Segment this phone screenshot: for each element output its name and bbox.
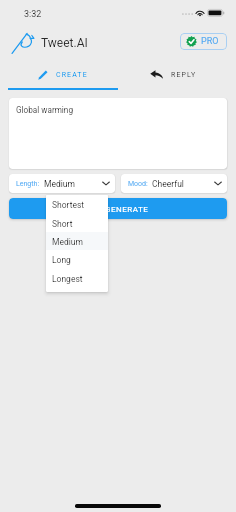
- staticText: Global warming: [16, 105, 73, 115]
- staticText: Cheerful: [152, 179, 184, 189]
- staticText: 3:32: [24, 9, 42, 20]
- staticText: Shortest: [52, 200, 85, 210]
- button[interactable]: Medium: [46, 232, 108, 252]
- button[interactable]: Global warming: [9, 98, 227, 169]
- staticText: Tweet.AI: [41, 36, 88, 50]
- staticText: Longest: [52, 274, 83, 284]
- staticText: Short: [52, 219, 73, 229]
- button[interactable]: REPLY: [118, 60, 236, 89]
- staticText: Mood:: [128, 180, 148, 188]
- staticText: Long: [52, 255, 71, 265]
- button[interactable]: Short: [46, 214, 108, 234]
- staticText: CREATE: [56, 71, 88, 79]
- staticText: Medium: [44, 179, 75, 189]
- staticText: Length:: [16, 180, 40, 188]
- staticText: Medium: [52, 237, 83, 247]
- button[interactable]: PRO: [180, 33, 227, 50]
- staticText: PRO: [201, 36, 219, 47]
- button[interactable]: Longest: [46, 269, 108, 289]
- button[interactable]: Length:: [9, 174, 115, 193]
- button[interactable]: Mood:: [121, 174, 227, 193]
- staticText: REPLY: [171, 71, 197, 79]
- staticText: GENERATE: [105, 205, 149, 214]
- button[interactable]: CREATE: [0, 60, 118, 89]
- button[interactable]: Shortest: [46, 195, 108, 215]
- button[interactable]: Long: [46, 250, 108, 270]
- button[interactable]: GENERATE: [9, 198, 227, 219]
